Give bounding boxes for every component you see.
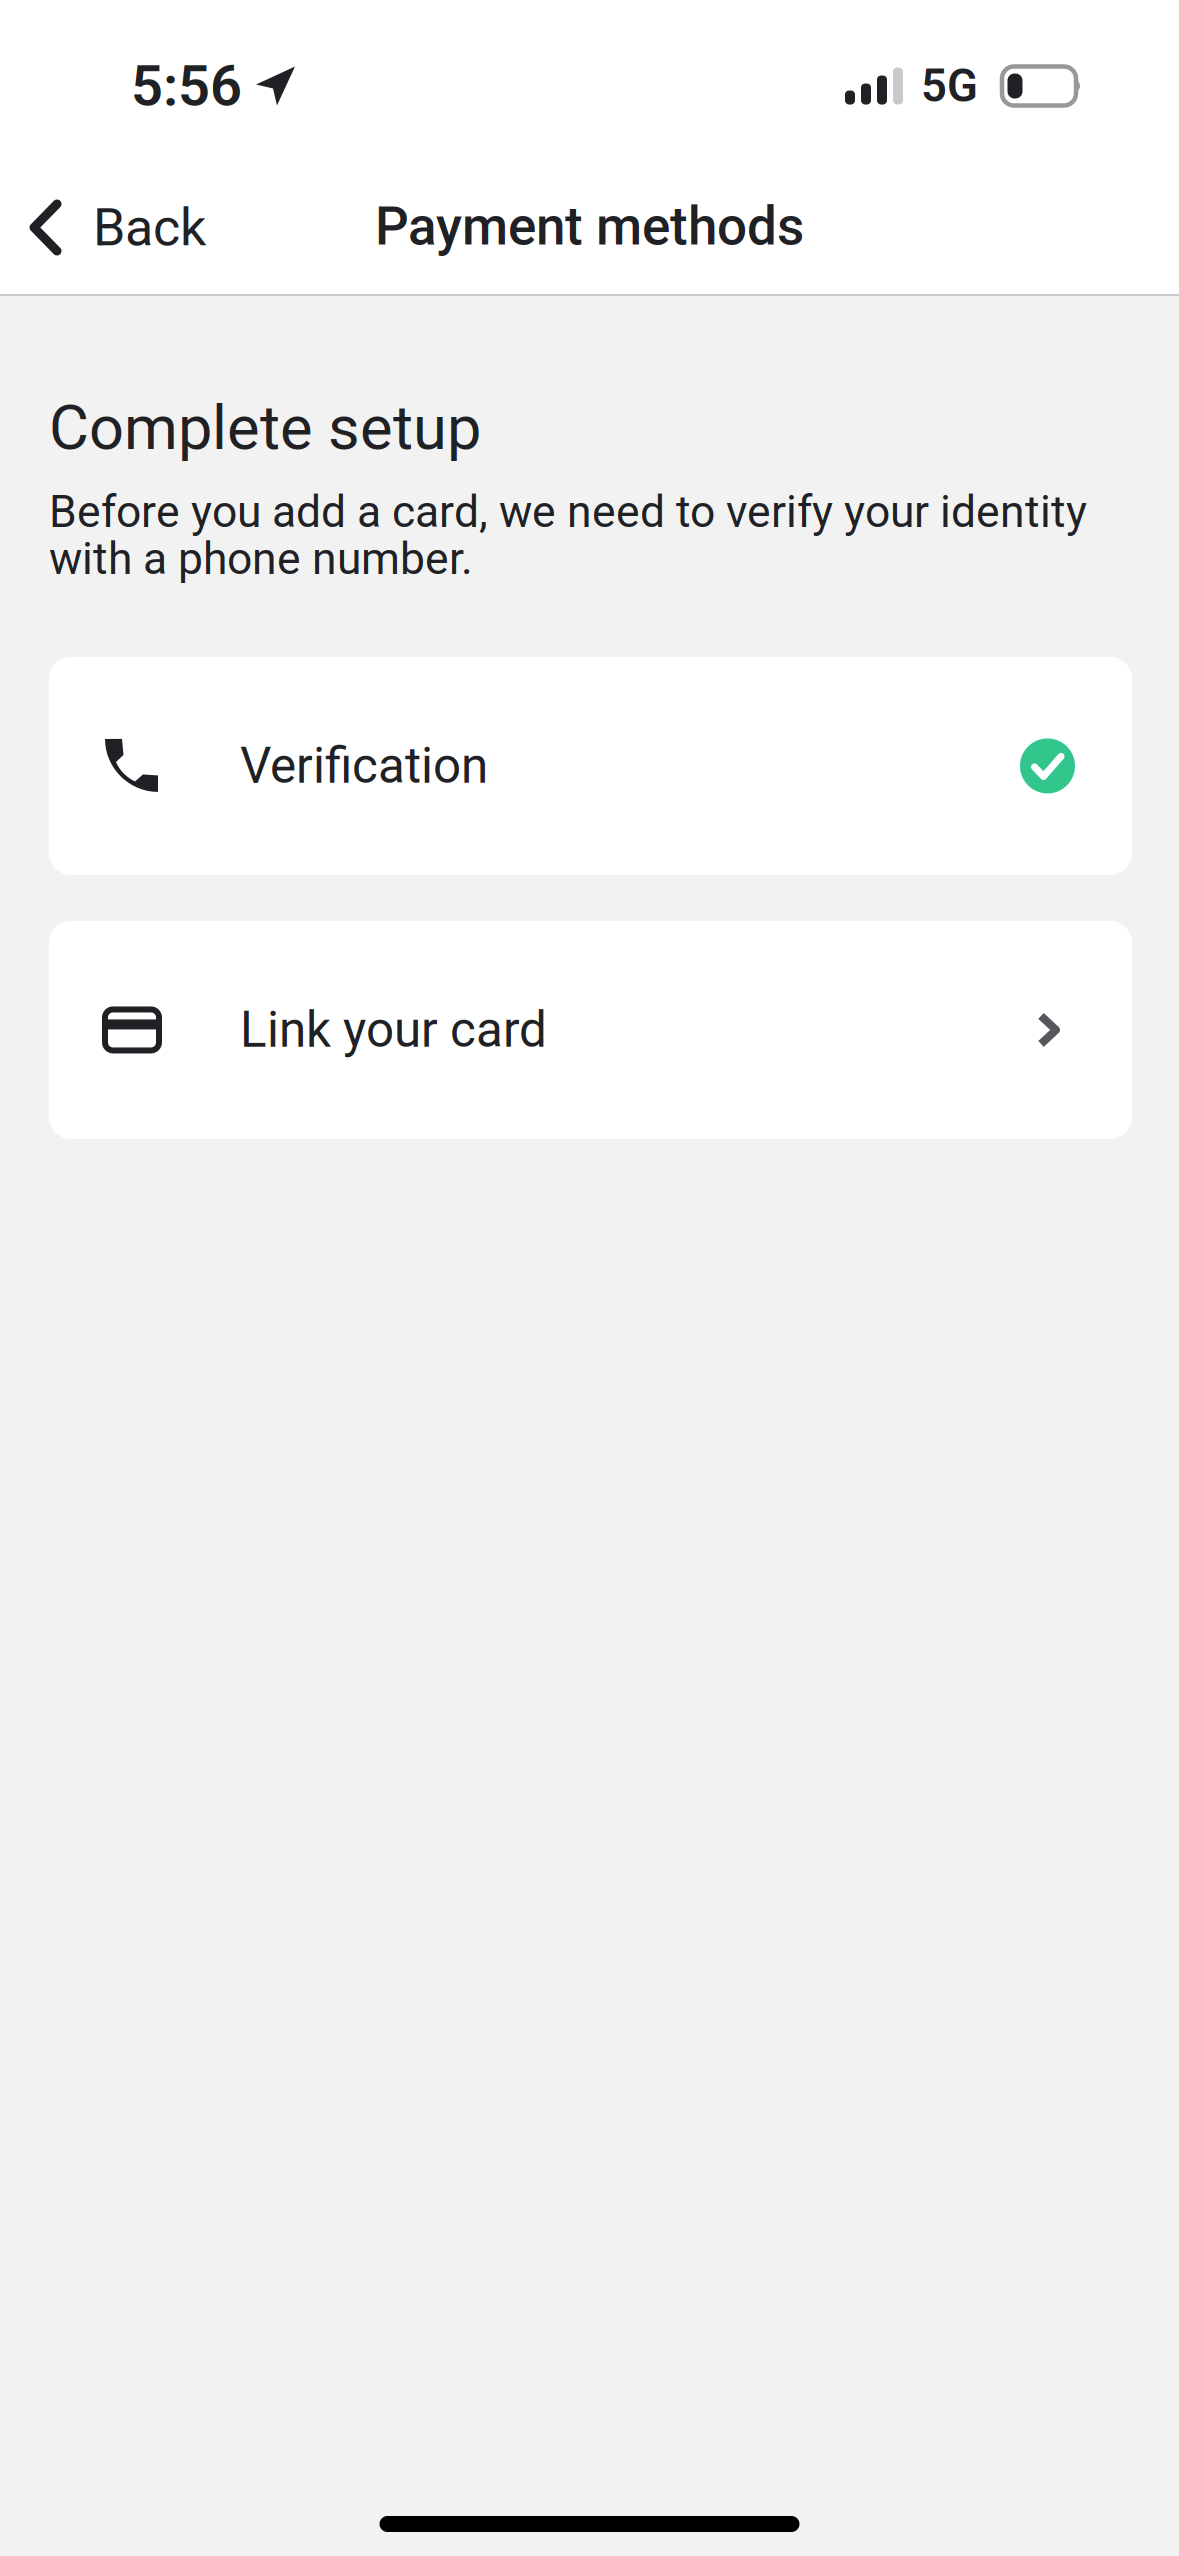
staticText: Before you add a card, we need to verify…: [49, 486, 1087, 585]
staticText: Back: [93, 197, 206, 258]
staticText: Payment methods: [375, 195, 804, 257]
staticText: Complete setup: [49, 392, 481, 464]
staticText: Link your card: [240, 1001, 547, 1059]
button[interactable]: Verification: [49, 657, 1132, 875]
button[interactable]: Back: [0, 172, 236, 294]
staticText: 5:56: [131, 53, 242, 119]
staticText: 5G: [921, 59, 978, 112]
staticText: Verification: [240, 737, 488, 795]
button[interactable]: Link your card: [49, 921, 1132, 1139]
